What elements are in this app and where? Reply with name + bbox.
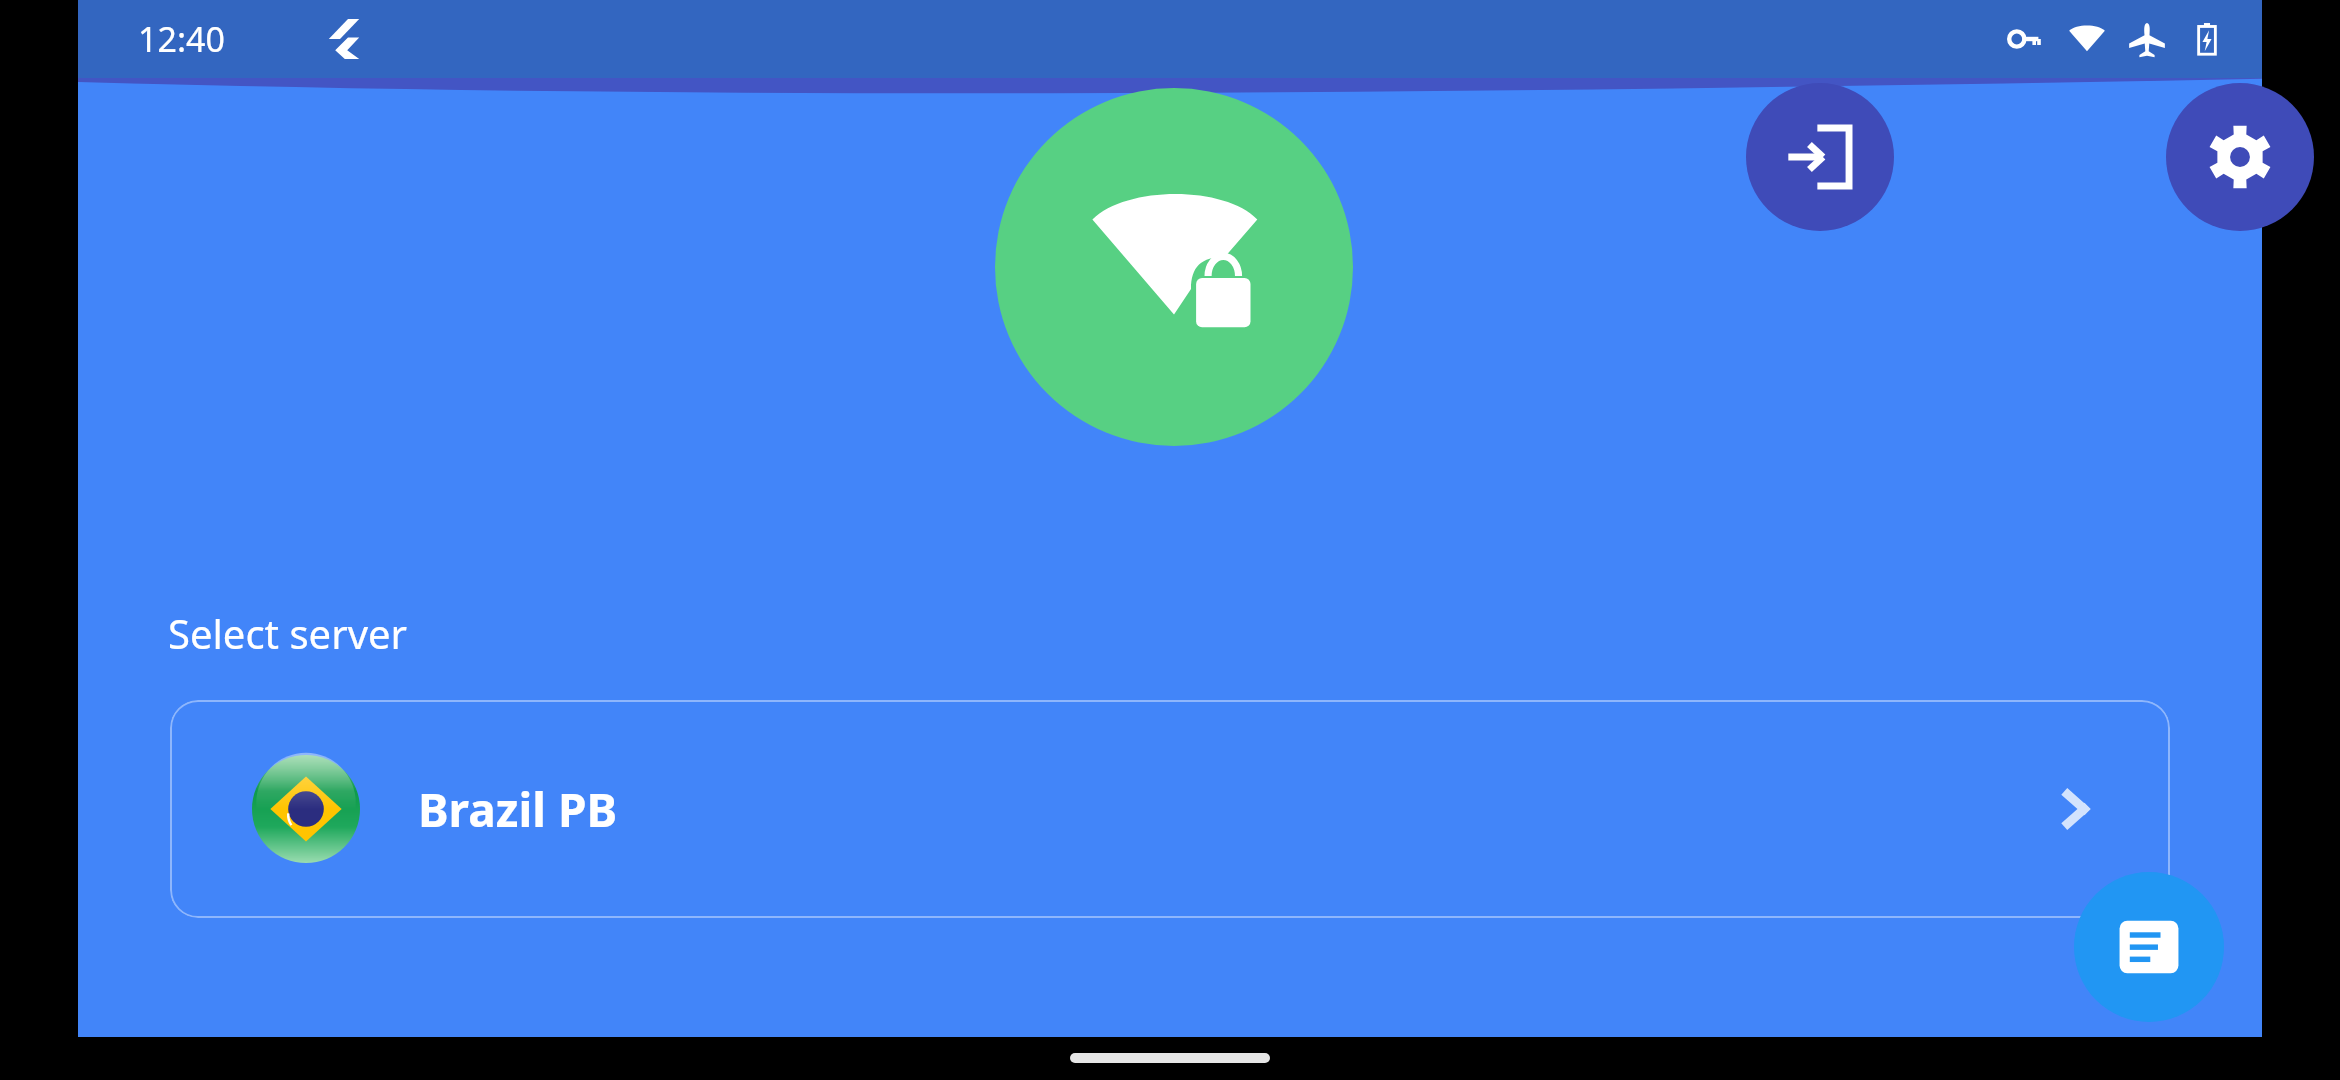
- button[interactable]: Settings: [2166, 83, 2314, 231]
- staticText: Select server: [168, 606, 408, 660]
- staticText: 12:40: [138, 16, 225, 62]
- button[interactable]: Brazil PB: [170, 700, 2170, 918]
- button[interactable]: Login: [1746, 83, 1894, 231]
- button[interactable]: Connection status: [995, 88, 1353, 446]
- button[interactable]: Logs: [2074, 872, 2224, 1022]
- staticText: Brazil PB: [418, 778, 618, 841]
